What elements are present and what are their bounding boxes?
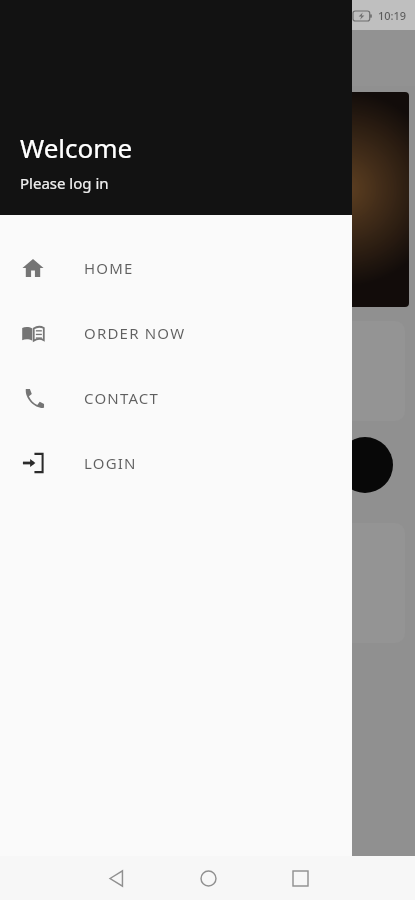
staticText: Delivery charge: Additional fee	[24, 333, 211, 351]
button[interactable]: LOGIN	[0, 430, 352, 495]
staticText: Please log in	[20, 173, 109, 193]
button[interactable]: Cart	[337, 437, 393, 493]
staticText: CONTACT	[84, 388, 160, 408]
staticText: HOME	[84, 258, 134, 278]
staticText: LOGIN	[84, 453, 137, 473]
staticText: ORDER NOW	[84, 323, 186, 343]
staticText: No extra service charge	[24, 389, 168, 407]
button[interactable]: CONTACT	[0, 365, 352, 430]
button[interactable]: ORDER NOW	[0, 300, 352, 365]
button[interactable]: Home	[162, 856, 254, 900]
staticText: 10:19	[378, 8, 407, 23]
button[interactable]	[6, 92, 135, 307]
button[interactable]	[143, 92, 272, 307]
button[interactable]	[280, 92, 409, 307]
button[interactable]: Back	[70, 856, 162, 900]
button[interactable]: HOME	[0, 235, 352, 300]
button[interactable]: Recents	[254, 856, 346, 900]
staticText: Welcome	[20, 130, 133, 165]
